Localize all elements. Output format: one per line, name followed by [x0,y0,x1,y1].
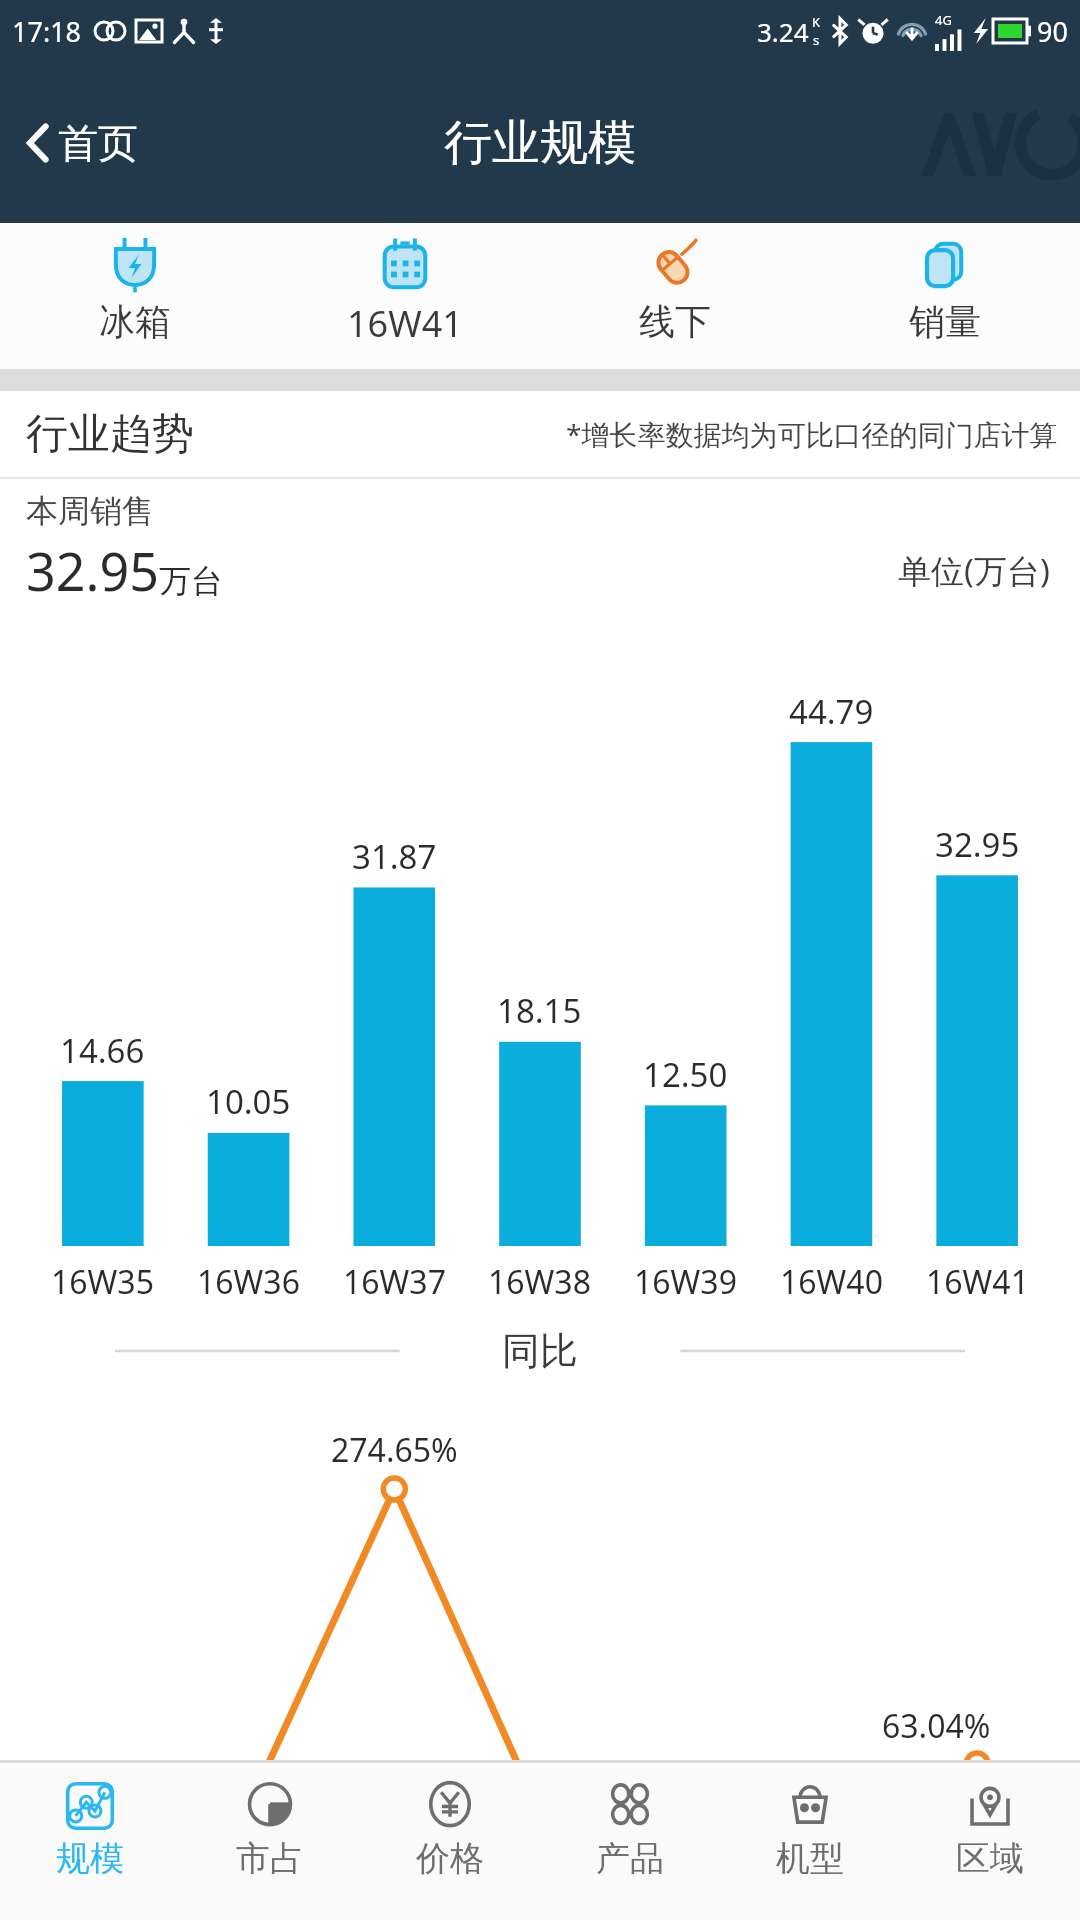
staticText: 63.04% [882,1704,991,1748]
staticText: 274.65% [331,1428,458,1472]
button[interactable]: 产品 [540,1763,720,1920]
button[interactable]: 规模 [0,1763,180,1920]
staticText: 区域 [956,1837,1024,1880]
staticText: 32.95 [935,822,1020,867]
button[interactable]: 销量 [810,223,1080,369]
staticText: 价格 [416,1837,484,1880]
staticText: 16W41 [347,299,463,348]
staticText: 4G [935,11,952,29]
staticText: 销量 [909,299,981,344]
staticText: 产品 [596,1837,664,1880]
staticText: 44.79 [789,689,874,734]
staticText: 同比 [502,1327,578,1375]
staticText: 10.05 [206,1079,291,1124]
button[interactable]: 首页 [16,104,148,182]
staticText: 17:18 [12,13,82,50]
staticText: 16W35 [51,1260,154,1304]
staticText: 16W37 [343,1260,446,1304]
staticText: 90 [1037,13,1068,50]
staticText: 16W41 [926,1260,1029,1304]
staticText: 31.87 [352,834,437,879]
staticText: 万台 [159,561,223,601]
other: AVC logo [920,110,1072,176]
button[interactable]: 价格 [360,1763,540,1920]
staticText: 16W36 [197,1260,300,1304]
staticText: 本周销售 [26,491,154,531]
staticText: 单位(万台) [898,548,1050,593]
staticText: 32.95 [26,535,159,606]
staticText: 行业趋势 [26,408,194,461]
button[interactable]: 16W41 [270,223,540,369]
staticText: s [813,31,820,49]
staticText: 3.24 [757,14,809,49]
button[interactable]: 冰箱 [0,223,270,369]
staticText: 18.15 [497,988,582,1033]
staticText: *增长率数据均为可比口径的同门店计算 [566,415,1058,453]
staticText: 线下 [639,299,711,344]
staticText: 冰箱 [99,299,171,344]
staticText: 市占 [236,1837,304,1880]
staticText: 机型 [776,1837,844,1880]
staticText: 首页 [58,118,138,168]
staticText: 行业规模 [444,113,636,173]
button[interactable]: 线下 [540,223,810,369]
staticText: 16W39 [634,1260,737,1304]
staticText: 12.50 [643,1052,728,1097]
staticText: 14.66 [60,1028,145,1073]
staticText: 16W38 [488,1260,591,1304]
staticText: 规模 [56,1837,124,1880]
staticText: K [812,13,821,31]
button[interactable]: 区域 [900,1763,1080,1920]
button[interactable]: 市占 [180,1763,360,1920]
staticText: 16W40 [780,1260,883,1304]
button[interactable]: 机型 [720,1763,900,1920]
